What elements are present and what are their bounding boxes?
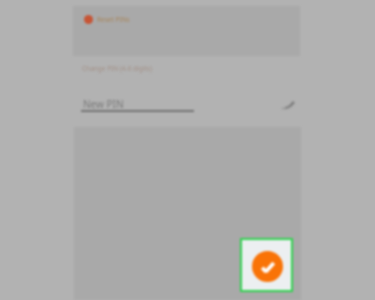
button[interactable]: Edit PIN — [278, 96, 296, 112]
button[interactable]: Confirm PIN — [252, 251, 283, 282]
staticText: Change PIN (4-6 digits) — [82, 64, 152, 73]
staticText: New PIN — [83, 97, 124, 111]
button[interactable]: Reset PINs — [84, 15, 130, 24]
staticText: Reset PINs — [97, 15, 130, 24]
